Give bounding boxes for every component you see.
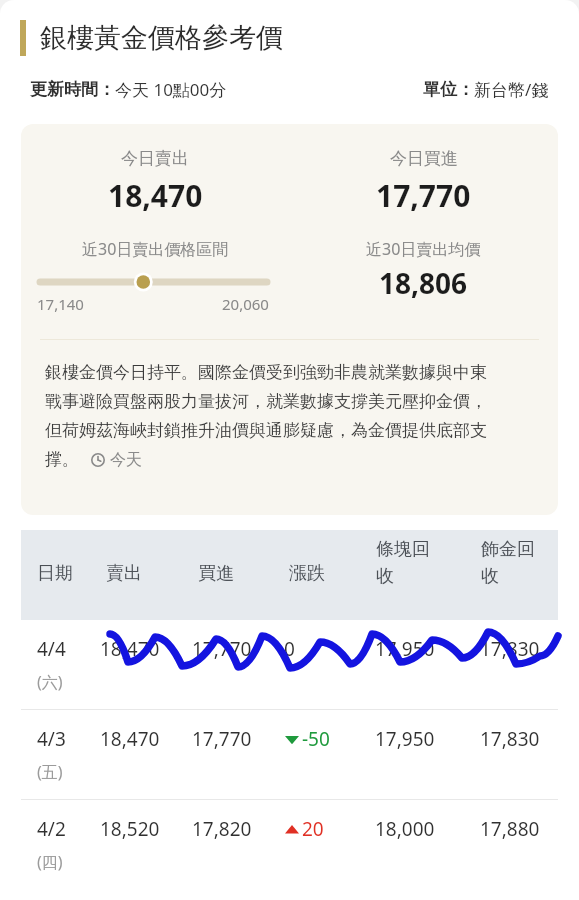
staticText: 收 <box>481 565 499 588</box>
staticText: 飾金回 <box>481 538 535 561</box>
staticText: 但荷姆茲海峽封鎖推升油價與通膨疑慮，為金價提供底部支 <box>45 420 487 441</box>
staticText: 條塊回 <box>376 538 430 561</box>
staticText: 漲跌 <box>289 562 325 585</box>
staticText: 單位： <box>423 79 474 100</box>
staticText: 今日買進 <box>390 148 458 169</box>
staticText: 銀樓金價今日持平。國際金價受到強勁非農就業數據與中東 <box>45 362 487 383</box>
staticText: 賣出 <box>106 562 142 585</box>
staticText: 17,880 <box>480 816 540 842</box>
staticText: (五) <box>37 761 63 783</box>
button[interactable]: 4/3 <box>0 710 579 799</box>
staticText: 17,950 <box>375 726 435 752</box>
staticText: 17,950 <box>375 636 435 662</box>
staticText: 18,470 <box>108 175 203 216</box>
button[interactable]: 4/2 <box>0 800 579 889</box>
staticText: 0 <box>284 636 295 662</box>
staticText: 18,470 <box>100 636 160 662</box>
staticText: -50 <box>302 726 330 752</box>
staticText: 17,770 <box>192 726 252 752</box>
staticText: 近30日賣出均價 <box>366 238 481 260</box>
staticText: 銀樓黃金價格參考價 <box>40 21 283 55</box>
button[interactable]: 今日賣出 <box>21 124 558 515</box>
staticText: 新台幣/錢 <box>474 78 549 101</box>
staticText: 近30日賣出價格區間 <box>82 238 229 260</box>
staticText: 17,770 <box>192 636 252 662</box>
staticText: (六) <box>37 671 63 693</box>
staticText: 收 <box>376 565 394 588</box>
staticText: 今天 10點00分 <box>115 78 227 101</box>
staticText: 4/3 <box>37 726 66 752</box>
staticText: 撑。 <box>45 449 79 470</box>
staticText: 17,830 <box>480 726 540 752</box>
staticText: 18,470 <box>100 726 160 752</box>
staticText: 20 <box>302 816 324 842</box>
staticText: 戰事避險買盤兩股力量拔河，就業數據支撐美元壓抑金價， <box>45 391 487 412</box>
other: Time <box>91 453 105 467</box>
staticText: 18,000 <box>375 816 435 842</box>
staticText: 18,806 <box>379 264 468 302</box>
staticText: 買進 <box>198 562 234 585</box>
staticText: 17,140 <box>37 294 84 314</box>
button[interactable]: 4/4 <box>0 620 579 709</box>
staticText: 17,820 <box>192 816 252 842</box>
staticText: 18,520 <box>100 816 160 842</box>
staticText: 17,770 <box>376 175 471 216</box>
staticText: 4/4 <box>37 636 66 662</box>
staticText: 更新時間： <box>30 79 115 100</box>
staticText: 日期 <box>37 562 73 585</box>
staticText: 4/2 <box>37 816 66 842</box>
staticText: 20,060 <box>222 294 269 314</box>
staticText: (四) <box>37 851 63 873</box>
staticText: 今天 <box>110 450 142 470</box>
staticText: 17,830 <box>480 636 540 662</box>
staticText: 今日賣出 <box>121 148 189 169</box>
